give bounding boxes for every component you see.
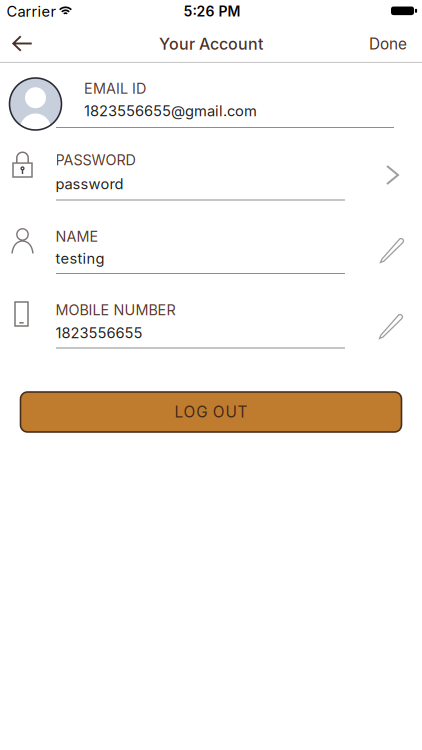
staticText: Done	[369, 35, 407, 53]
staticText: password	[55, 175, 123, 193]
staticText: Carrier	[6, 3, 56, 20]
button[interactable]: Edit name	[372, 230, 411, 270]
staticText: 1823556655@gmail.com	[84, 102, 257, 120]
button[interactable]: PASSWORD	[0, 146, 422, 206]
staticText: 5:26 PM	[183, 3, 240, 20]
staticText: testing	[55, 250, 104, 267]
staticText: PASSWORD	[55, 151, 135, 169]
button[interactable]: Back	[1, 24, 44, 63]
button[interactable]: LOG OUT	[20, 392, 401, 432]
staticText: Your Account	[159, 34, 263, 54]
staticText: NAME	[55, 228, 98, 245]
staticText: MOBILE NUMBER	[55, 301, 175, 319]
staticText: LOG OUT	[175, 403, 247, 421]
staticText: 1823556655	[55, 324, 142, 342]
button[interactable]: Done	[361, 27, 415, 61]
staticText: EMAIL ID	[84, 80, 146, 97]
button[interactable]: Edit mobile number	[371, 306, 410, 346]
